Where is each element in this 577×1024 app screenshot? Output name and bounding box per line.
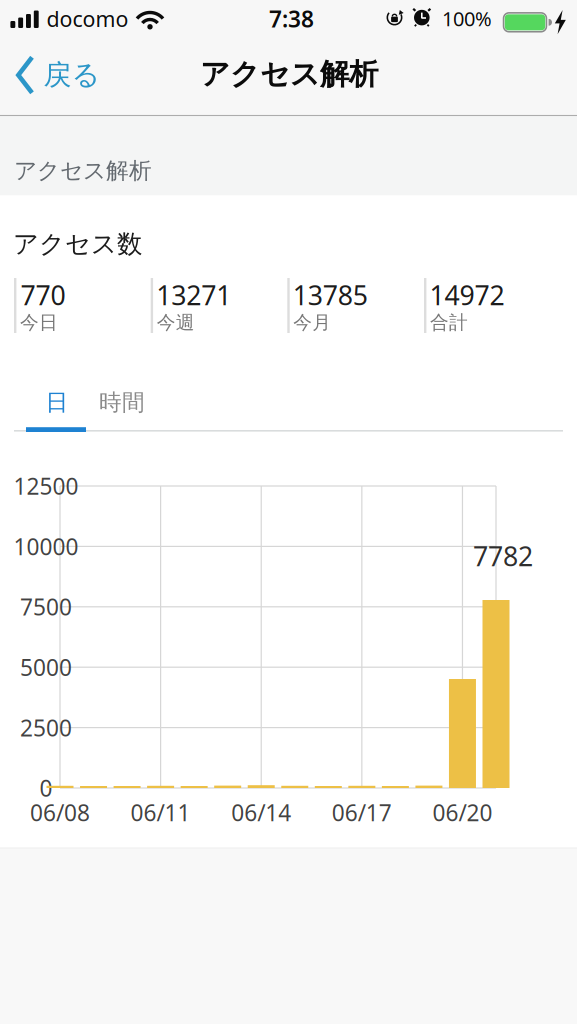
staticText: 7500 (20, 592, 72, 622)
staticText: 戻る (43, 58, 100, 92)
staticText: 06/14 (231, 797, 291, 827)
staticText: 13785 (293, 277, 368, 313)
staticText: 今月 (293, 311, 331, 334)
staticText: 合計 (430, 311, 468, 334)
staticText: 12500 (13, 471, 78, 501)
staticText: 7782 (473, 538, 533, 574)
staticText: 今日 (20, 311, 58, 334)
staticText: アクセス数 (13, 228, 142, 259)
staticText: 時間 (99, 389, 145, 416)
staticText: 今週 (157, 311, 195, 334)
staticText: 10000 (13, 531, 78, 561)
button[interactable]: 戻る (8, 52, 108, 98)
staticText: アクセス解析 (200, 56, 378, 92)
staticText: 14972 (429, 277, 504, 313)
button[interactable]: 時間 (89, 381, 155, 423)
staticText: 13271 (156, 277, 231, 313)
staticText: 100% (442, 5, 492, 32)
staticText: 06/17 (332, 797, 392, 827)
staticText: 7:38 (269, 3, 314, 34)
staticText: 2500 (20, 712, 72, 743)
button[interactable]: 日 (27, 381, 87, 423)
staticText: 5000 (20, 652, 72, 682)
staticText: アクセス解析 (14, 157, 152, 185)
staticText: 770 (20, 277, 65, 313)
staticText: docomo (46, 4, 128, 33)
staticText: 06/11 (131, 797, 191, 827)
staticText: 06/20 (432, 797, 492, 827)
staticText: 日 (45, 389, 68, 416)
staticText: 0 (39, 773, 52, 803)
staticText: 06/08 (30, 797, 90, 827)
